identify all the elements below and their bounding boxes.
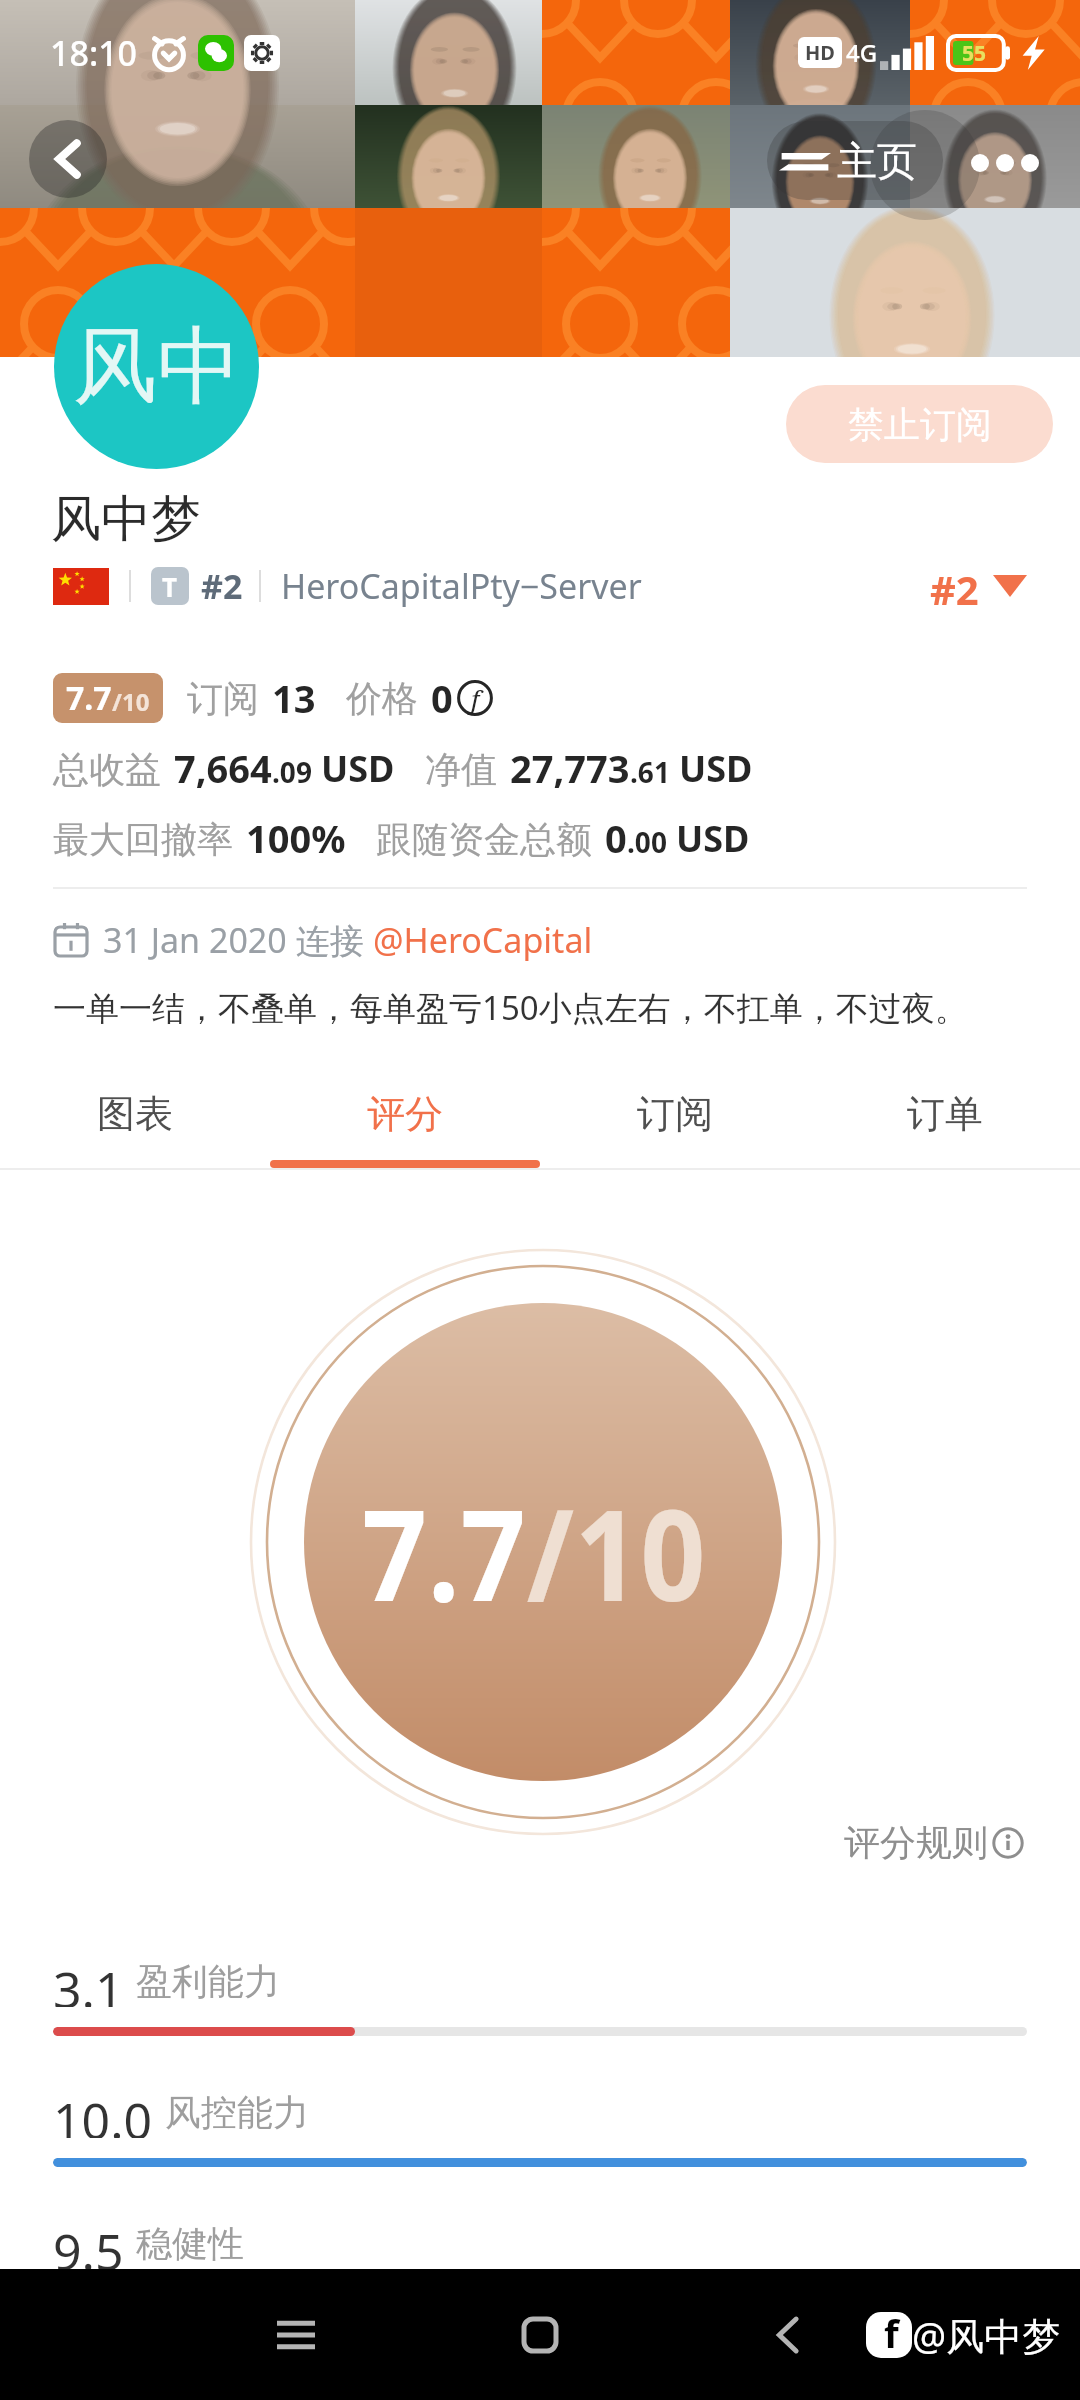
button[interactable]: 图表: [0, 1070, 270, 1170]
staticText: .00: [627, 823, 667, 861]
staticText: 订阅: [187, 676, 259, 721]
staticText: 订阅: [637, 1090, 713, 1138]
staticText: 跟随资金总额: [376, 817, 592, 862]
staticText: 净值: [425, 747, 497, 792]
staticText: 一单一结，不叠单，每单盈亏150小点左右，不扛单，不过夜。: [53, 985, 968, 1030]
button[interactable]: 订阅: [540, 1070, 810, 1170]
staticText: 13: [272, 672, 316, 724]
staticText: 7.7: [66, 676, 112, 720]
staticText: 0: [431, 672, 453, 724]
staticText: 3.1: [53, 1955, 124, 2007]
staticText: 盈利能力: [136, 1959, 280, 2004]
staticText: 27,773: [510, 742, 630, 794]
staticText: @HeroCapital: [373, 917, 593, 963]
staticText: 0: [605, 812, 627, 864]
staticText: 4G: [846, 36, 878, 69]
staticText: USD: [321, 744, 395, 793]
button[interactable]: 主页: [767, 121, 943, 200]
staticText: 55: [962, 39, 987, 68]
staticText: 风控能力: [165, 2090, 309, 2135]
staticText: 价格: [346, 676, 418, 721]
button[interactable]: 评分规则: [838, 1814, 1030, 1871]
staticText: #2: [201, 563, 243, 609]
staticText: f: [471, 681, 480, 716]
staticText: 10.0: [53, 2086, 153, 2138]
staticText: HeroCapitalPty−Server: [281, 563, 642, 609]
button[interactable]: #2: [930, 562, 1027, 610]
button[interactable]: Back: [741, 2269, 833, 2400]
button[interactable]: Profile avatar: [54, 264, 259, 469]
button[interactable]: Back: [29, 120, 107, 198]
staticText: 评分规则: [844, 1820, 988, 1865]
staticText: 7,664: [174, 742, 272, 794]
staticText: #2: [930, 562, 979, 610]
button[interactable]: 订单: [810, 1070, 1080, 1170]
staticText: /10: [527, 1466, 707, 1638]
staticText: T: [162, 569, 178, 604]
staticText: 31 Jan 2020: [103, 917, 296, 963]
staticText: f: [884, 2307, 899, 2359]
staticText: 风中: [73, 314, 241, 420]
staticText: /10: [112, 685, 150, 718]
staticText: USD: [679, 744, 753, 793]
staticText: 总收益: [53, 747, 161, 792]
staticText: USD: [676, 814, 750, 863]
staticText: 订单: [907, 1090, 983, 1138]
staticText: 9.5: [53, 2217, 124, 2269]
staticText: 主页: [837, 136, 917, 186]
button[interactable]: 禁止订阅: [786, 385, 1053, 463]
staticText: @风中梦: [912, 2309, 1061, 2361]
staticText: 稳健性: [136, 2221, 244, 2266]
staticText: 7.7: [362, 1466, 527, 1638]
staticText: 评分: [367, 1090, 443, 1138]
button[interactable]: Home: [494, 2269, 586, 2400]
staticText: 最大回撤率: [53, 817, 233, 862]
staticText: 风中梦: [51, 488, 201, 551]
button[interactable]: More options: [960, 128, 1050, 198]
staticText: .09: [272, 753, 312, 791]
staticText: 图表: [97, 1090, 173, 1138]
button[interactable]: @HeroCapital: [373, 917, 593, 963]
staticText: 禁止订阅: [848, 402, 992, 447]
staticText: .61: [630, 753, 670, 791]
button[interactable]: Recents: [250, 2269, 342, 2400]
staticText: HD: [805, 39, 835, 66]
staticText: 连接: [296, 917, 373, 963]
button[interactable]: 评分: [270, 1070, 540, 1170]
staticText: 18:10: [50, 30, 138, 76]
staticText: 100%: [246, 812, 346, 864]
